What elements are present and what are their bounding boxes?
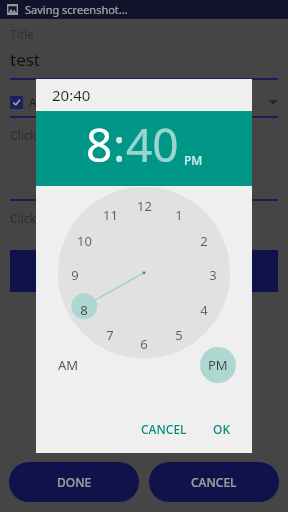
button[interactable]: 9 xyxy=(63,266,87,284)
button[interactable]: PM xyxy=(184,152,203,168)
staticText: 1 xyxy=(175,206,183,224)
button[interactable]: Open dropdown xyxy=(268,97,278,107)
button[interactable]: 8 xyxy=(72,301,96,319)
staticText: Click T xyxy=(10,210,46,226)
staticText: Click T xyxy=(10,127,46,143)
staticText: 11 xyxy=(103,206,118,224)
button[interactable]: PM xyxy=(200,347,236,383)
staticText: Title xyxy=(10,26,34,42)
staticText: CANCEL xyxy=(141,421,187,437)
staticText: 3 xyxy=(209,266,217,284)
button[interactable]: OK xyxy=(205,415,238,443)
button[interactable]: 12 xyxy=(132,197,156,215)
staticText: 8 xyxy=(86,113,113,176)
button[interactable]: 4 xyxy=(192,301,216,319)
button[interactable]: 11 xyxy=(98,206,122,224)
staticText: 2 xyxy=(200,232,208,250)
button[interactable]: 3 xyxy=(201,266,225,284)
staticText: AM xyxy=(58,356,79,374)
button[interactable]: 7 xyxy=(98,326,122,344)
staticText: Saving screenshot… xyxy=(25,2,128,17)
button[interactable]: 10 xyxy=(72,232,96,250)
staticText: 9 xyxy=(71,266,79,284)
staticText: A xyxy=(29,94,37,110)
button[interactable]: 6 xyxy=(132,335,156,353)
staticText: CANCEL xyxy=(191,474,237,490)
button[interactable]: 8 xyxy=(86,113,113,176)
button[interactable]: AM xyxy=(50,347,86,383)
staticText: OK xyxy=(213,421,230,437)
button[interactable]: 5 xyxy=(167,326,191,344)
button[interactable]: Clock face, hour 8 selected xyxy=(36,186,252,411)
button[interactable]: DONE xyxy=(9,462,139,502)
staticText: 7 xyxy=(106,326,114,344)
staticText: 12 xyxy=(137,197,152,215)
staticText: 40 xyxy=(126,113,179,176)
staticText: DONE xyxy=(57,474,92,490)
staticText: PM xyxy=(208,356,228,374)
staticText: : xyxy=(113,113,126,176)
staticText: 8 xyxy=(80,301,88,319)
staticText: test xyxy=(10,48,41,71)
button[interactable]: 40 xyxy=(126,113,179,176)
staticText: 10 xyxy=(77,232,92,250)
staticText: 20:40 xyxy=(52,85,91,105)
button[interactable]: 2 xyxy=(192,232,216,250)
staticText: 4 xyxy=(200,301,208,319)
staticText: PM xyxy=(184,152,203,168)
staticText: 6 xyxy=(140,335,148,353)
button[interactable]: CANCEL xyxy=(149,462,279,502)
staticText: 5 xyxy=(175,326,183,344)
button[interactable]: 1 xyxy=(167,206,191,224)
button[interactable]: CANCEL xyxy=(133,415,195,443)
button[interactable] xyxy=(10,96,23,109)
button[interactable] xyxy=(10,250,278,292)
